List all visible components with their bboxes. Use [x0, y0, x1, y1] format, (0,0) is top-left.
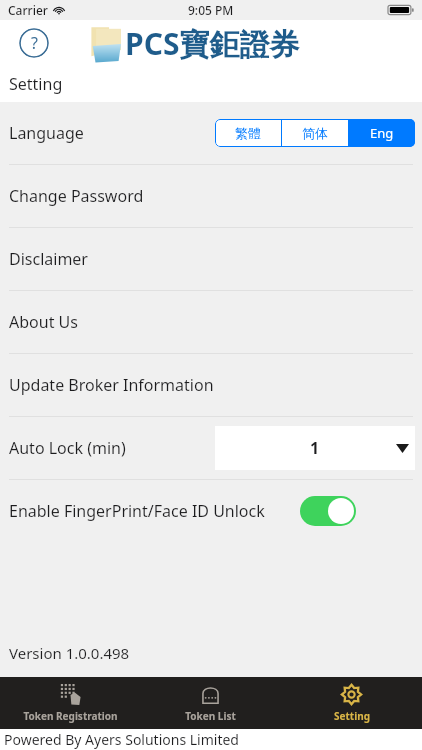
staticText: Setting	[334, 709, 370, 723]
staticText: 简体	[302, 125, 328, 141]
staticText: Eng	[370, 124, 394, 142]
staticText: Auto Lock (min)	[9, 437, 126, 459]
staticText: Change Password	[9, 185, 144, 207]
staticText: Version 1.0.0.498	[9, 643, 130, 663]
staticText: 繁體	[235, 125, 261, 141]
staticText: Update Broker Information	[9, 374, 214, 396]
staticText: Token Registration	[23, 709, 118, 723]
button[interactable]: Token Registration	[0, 677, 140, 729]
staticText: Setting	[9, 73, 63, 95]
button[interactable]: About Us	[0, 291, 422, 353]
staticText: Token List	[185, 709, 236, 723]
button[interactable]: Token List	[140, 677, 281, 729]
button[interactable]: Enable FingerPrint Face ID Unlock toggle	[300, 496, 356, 526]
button[interactable]: 简体	[282, 119, 348, 147]
button[interactable]: Disclaimer	[0, 228, 422, 290]
button[interactable]: 1	[215, 426, 415, 470]
staticText: 9:05 PM	[188, 2, 234, 18]
button[interactable]: Change Password	[0, 165, 422, 227]
staticText: Enable FingerPrint/Face ID Unlock	[9, 500, 265, 522]
staticText: Disclaimer	[9, 248, 88, 270]
button[interactable]: Eng	[349, 119, 415, 147]
staticText: ?	[31, 32, 38, 54]
staticText: About Us	[9, 311, 78, 333]
staticText: Powered By Ayers Solutions Limited	[4, 730, 239, 749]
staticText: Carrier	[8, 2, 48, 18]
button[interactable]: 繁體	[215, 119, 281, 147]
button[interactable]: Setting	[281, 677, 422, 729]
button[interactable]: Help	[19, 28, 49, 58]
staticText: 1	[310, 437, 320, 459]
staticText: Language	[9, 122, 84, 144]
button[interactable]: Update Broker Information	[0, 354, 422, 416]
staticText: PCS寶鉅證券	[125, 23, 300, 64]
